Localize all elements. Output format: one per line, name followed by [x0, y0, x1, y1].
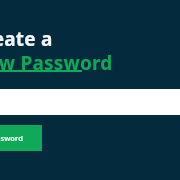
staticText: Set Password: [0, 133, 44, 143]
staticText: Create a: [0, 26, 112, 52]
staticText: New Password: [0, 50, 152, 76]
button[interactable]: Set Password: [0, 125, 42, 151]
